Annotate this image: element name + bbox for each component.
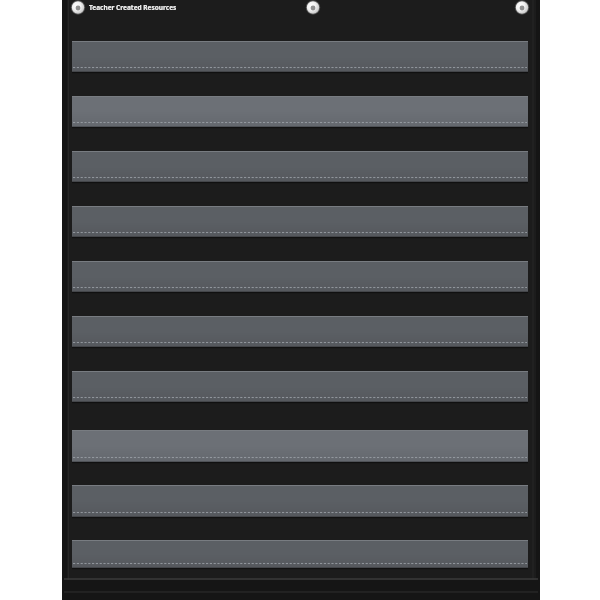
button[interactable]: Teacher Created Resources black pocket c… bbox=[0, 0, 600, 600]
